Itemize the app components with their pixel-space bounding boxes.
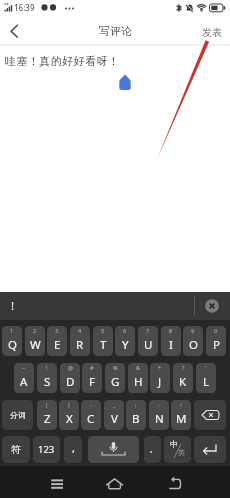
staticText: _ xyxy=(113,401,116,408)
staticText: 1 xyxy=(10,327,14,334)
staticText: 123 xyxy=(38,443,55,456)
button[interactable]: 8 xyxy=(161,326,181,356)
button[interactable]: ! xyxy=(37,363,57,393)
staticText: 5 xyxy=(101,327,105,334)
staticText: Q xyxy=(8,337,17,353)
button[interactable]: 6 xyxy=(115,326,135,356)
staticText: 写评论 xyxy=(99,24,132,38)
button[interactable]: 3 xyxy=(47,326,67,356)
staticText: 7 xyxy=(146,327,150,334)
button[interactable]: # xyxy=(82,363,102,393)
button[interactable]: ' xyxy=(196,363,216,393)
button[interactable] xyxy=(153,466,198,498)
button[interactable]: ~ xyxy=(14,363,34,393)
staticText: I xyxy=(169,337,173,353)
staticText: E xyxy=(54,337,61,353)
staticText: H xyxy=(134,374,143,390)
staticText: ) xyxy=(68,401,70,408)
staticText: / xyxy=(180,401,183,408)
staticText: N xyxy=(155,411,164,427)
button[interactable]: , xyxy=(64,436,82,463)
button[interactable]: 符 xyxy=(2,436,30,463)
staticText: & xyxy=(136,364,141,371)
button[interactable]: 发表 xyxy=(197,22,227,42)
staticText: O xyxy=(189,337,198,353)
staticText: - xyxy=(90,401,92,408)
staticText: T xyxy=(100,337,107,353)
staticText: 8 xyxy=(169,327,173,334)
staticText: ~ xyxy=(22,364,26,371)
staticText: 。 xyxy=(149,443,158,454)
staticText: X xyxy=(66,411,73,427)
staticText: D xyxy=(66,374,75,390)
staticText: 3 xyxy=(55,327,59,334)
button[interactable]: * xyxy=(150,363,170,393)
staticText: A xyxy=(20,374,28,390)
button[interactable]: 中 xyxy=(164,436,191,463)
staticText: B xyxy=(132,411,140,427)
button[interactable]: @ xyxy=(60,363,80,393)
button[interactable]: 7 xyxy=(138,326,158,356)
staticText: ? xyxy=(182,364,185,371)
staticText: # xyxy=(90,364,94,371)
staticText: * xyxy=(158,364,162,371)
button[interactable]: ! xyxy=(0,292,230,320)
button[interactable]: ; xyxy=(126,400,146,430)
button[interactable] xyxy=(2,21,28,43)
button[interactable] xyxy=(88,436,139,463)
staticText: 16:39 xyxy=(14,2,35,13)
button[interactable] xyxy=(35,466,80,498)
staticText: Z xyxy=(44,411,51,427)
staticText: ! xyxy=(11,298,15,314)
staticText: 中 xyxy=(170,439,178,449)
button[interactable]: % xyxy=(105,363,125,393)
staticText: G xyxy=(111,374,120,390)
button[interactable]: 123 xyxy=(33,436,60,463)
button[interactable]: 9 xyxy=(183,326,203,356)
staticText: K xyxy=(179,374,187,390)
staticText: Y xyxy=(122,337,129,353)
staticText: R xyxy=(76,337,84,353)
staticText: 分词 xyxy=(10,410,26,420)
staticText: 2 xyxy=(33,327,37,334)
staticText: 英 xyxy=(178,448,185,457)
staticText: M xyxy=(176,411,187,427)
staticText: ( xyxy=(46,401,48,408)
button[interactable]: 5 xyxy=(93,326,113,356)
button[interactable]: - xyxy=(81,400,101,430)
staticText: C xyxy=(87,411,95,427)
staticText: 4 xyxy=(78,327,82,334)
staticText: S xyxy=(44,374,51,390)
button[interactable] xyxy=(194,400,226,430)
staticText: L xyxy=(203,374,210,390)
button[interactable]: 0 xyxy=(206,326,226,356)
staticText: 符 xyxy=(11,443,21,456)
button[interactable]: ? xyxy=(173,363,193,393)
staticText: % xyxy=(113,364,118,371)
staticText: ! xyxy=(46,364,48,371)
button[interactable]: & xyxy=(128,363,148,393)
button[interactable]: 2 xyxy=(25,326,45,356)
staticText: 哇塞！真的好好看呀！ xyxy=(5,54,120,68)
staticText: ' xyxy=(205,364,207,371)
button[interactable]: _ xyxy=(104,400,124,430)
button[interactable]: / xyxy=(171,400,191,430)
button[interactable]: 4 xyxy=(70,326,90,356)
staticText: F xyxy=(89,374,95,390)
staticText: U xyxy=(144,337,153,353)
staticText: V xyxy=(111,411,118,427)
staticText: J xyxy=(158,374,162,390)
button[interactable]: : xyxy=(149,400,169,430)
button[interactable]: ) xyxy=(59,400,79,430)
staticText: P xyxy=(213,337,220,353)
staticText: 9 xyxy=(191,327,195,334)
button[interactable]: ( xyxy=(37,400,57,430)
button[interactable]: 。 xyxy=(144,436,161,463)
button[interactable] xyxy=(194,436,226,463)
staticText: : xyxy=(158,401,160,408)
button[interactable]: 分词 xyxy=(2,400,33,430)
staticText: 0 xyxy=(214,327,218,334)
staticText: @ xyxy=(68,364,73,371)
button[interactable] xyxy=(92,466,137,498)
button[interactable]: 1 xyxy=(2,326,22,356)
